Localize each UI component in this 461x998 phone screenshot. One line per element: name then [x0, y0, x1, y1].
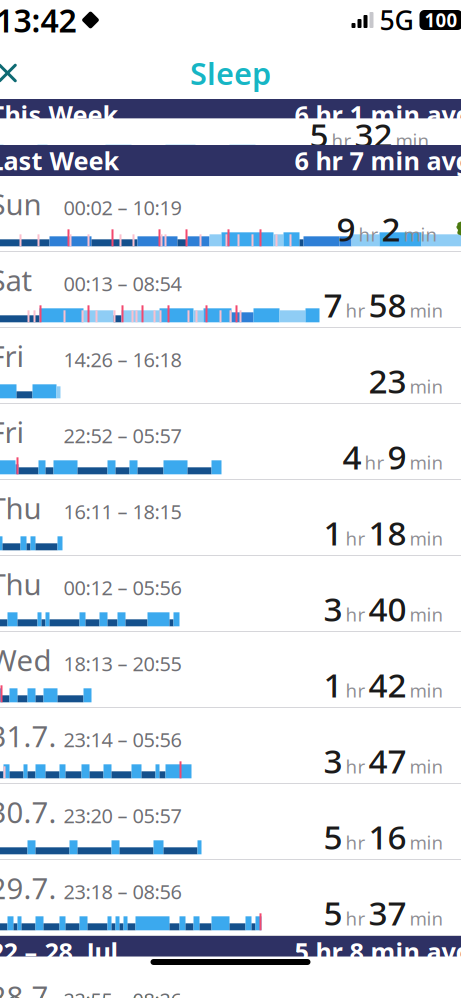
staticText: 9 [336, 206, 355, 251]
staticText: 4 [342, 434, 361, 479]
staticText: 2 [381, 206, 400, 251]
staticText: 00:13 – 08:54 [63, 270, 181, 297]
staticText: 32 [354, 112, 392, 157]
button[interactable]: Close [0, 53, 27, 93]
staticText: hr [345, 602, 365, 627]
staticText: min [409, 678, 443, 703]
button[interactable]: Sat [0, 252, 461, 328]
button[interactable]: 31.7. [0, 708, 461, 784]
button[interactable]: Wed [0, 632, 461, 708]
staticText: 9 [387, 434, 406, 479]
staticText: 7 [323, 282, 342, 327]
staticText: 14:26 – 16:18 [63, 346, 181, 373]
staticText: 23:18 – 08:56 [63, 878, 181, 905]
staticText: hr [345, 678, 365, 703]
staticText: 22:52 – 05:57 [63, 422, 181, 449]
staticText: min [395, 128, 429, 153]
staticText: min [409, 602, 443, 627]
staticText: 3 [323, 586, 342, 631]
staticText: 1 [323, 662, 342, 707]
staticText: 28.7. [0, 976, 56, 998]
staticText: min [409, 374, 443, 399]
staticText: 00:02 – 10:19 [63, 194, 181, 221]
staticText: Thu [0, 564, 41, 603]
staticText: 16:11 – 18:15 [63, 498, 181, 525]
staticText: Wed [0, 640, 51, 679]
staticText: hr [345, 906, 365, 931]
staticText: 5 [309, 112, 328, 157]
staticText: Sun [0, 184, 41, 223]
staticText: Fri [0, 336, 24, 375]
staticText: Sleep [190, 53, 271, 93]
staticText: Last Week [0, 144, 119, 177]
staticText: This Week [0, 98, 118, 131]
staticText: hr [331, 128, 351, 153]
staticText: Fri [0, 412, 24, 451]
staticText: 31.7. [0, 716, 56, 755]
staticText: min [409, 526, 443, 551]
button[interactable]: Thu [0, 556, 461, 632]
staticText: 5G [379, 2, 413, 38]
staticText: 47 [368, 738, 406, 783]
staticText: 1 [323, 510, 342, 555]
staticText: hr [345, 754, 365, 779]
button[interactable]: Fri [0, 404, 461, 480]
staticText: Thu [0, 488, 41, 527]
staticText: 18:13 – 20:55 [63, 650, 181, 677]
staticText: hr [345, 526, 365, 551]
button[interactable]: 30.7. [0, 784, 461, 860]
staticText: min [409, 298, 443, 323]
staticText: 23 [368, 358, 406, 403]
staticText: 22 – 28. Jul [0, 935, 118, 968]
staticText: hr [345, 830, 365, 855]
staticText: hr [364, 450, 384, 475]
staticText: 3 [323, 738, 342, 783]
staticText: 40 [368, 586, 406, 631]
staticText: 42 [368, 662, 406, 707]
staticText: 58 [368, 282, 406, 327]
staticText: 29.7. [0, 868, 56, 907]
staticText: 22:55 – 08:26 [63, 986, 181, 998]
button[interactable]: Sun [0, 176, 461, 252]
staticText: hr [358, 222, 378, 247]
staticText: 6 hr 1 min avg [294, 98, 461, 131]
button[interactable]: Fri [0, 328, 461, 404]
staticText: 23:14 – 05:56 [63, 726, 181, 753]
staticText: 37 [368, 890, 406, 935]
staticText: min [409, 830, 443, 855]
staticText: 13:42 [0, 0, 76, 41]
button[interactable]: 29.7. [0, 860, 461, 936]
staticText: min [409, 450, 443, 475]
staticText: 100 [424, 8, 457, 32]
staticText: 30.7. [0, 792, 56, 831]
staticText: 5 [323, 814, 342, 859]
staticText: 00:12 – 05:56 [63, 574, 181, 601]
staticText: 6 hr 7 min avg [294, 144, 461, 177]
staticText: min [409, 754, 443, 779]
staticText: 23:20 – 05:57 [63, 802, 181, 829]
staticText: 16 [368, 814, 406, 859]
staticText: 5 [323, 890, 342, 935]
button[interactable]: Thu [0, 480, 461, 556]
staticText: 18 [368, 510, 406, 555]
staticText: min [409, 906, 443, 931]
staticText: Sat [0, 260, 32, 299]
staticText: min [403, 222, 437, 247]
staticText: 5 hr 8 min avg [294, 935, 461, 968]
staticText: hr [345, 298, 365, 323]
